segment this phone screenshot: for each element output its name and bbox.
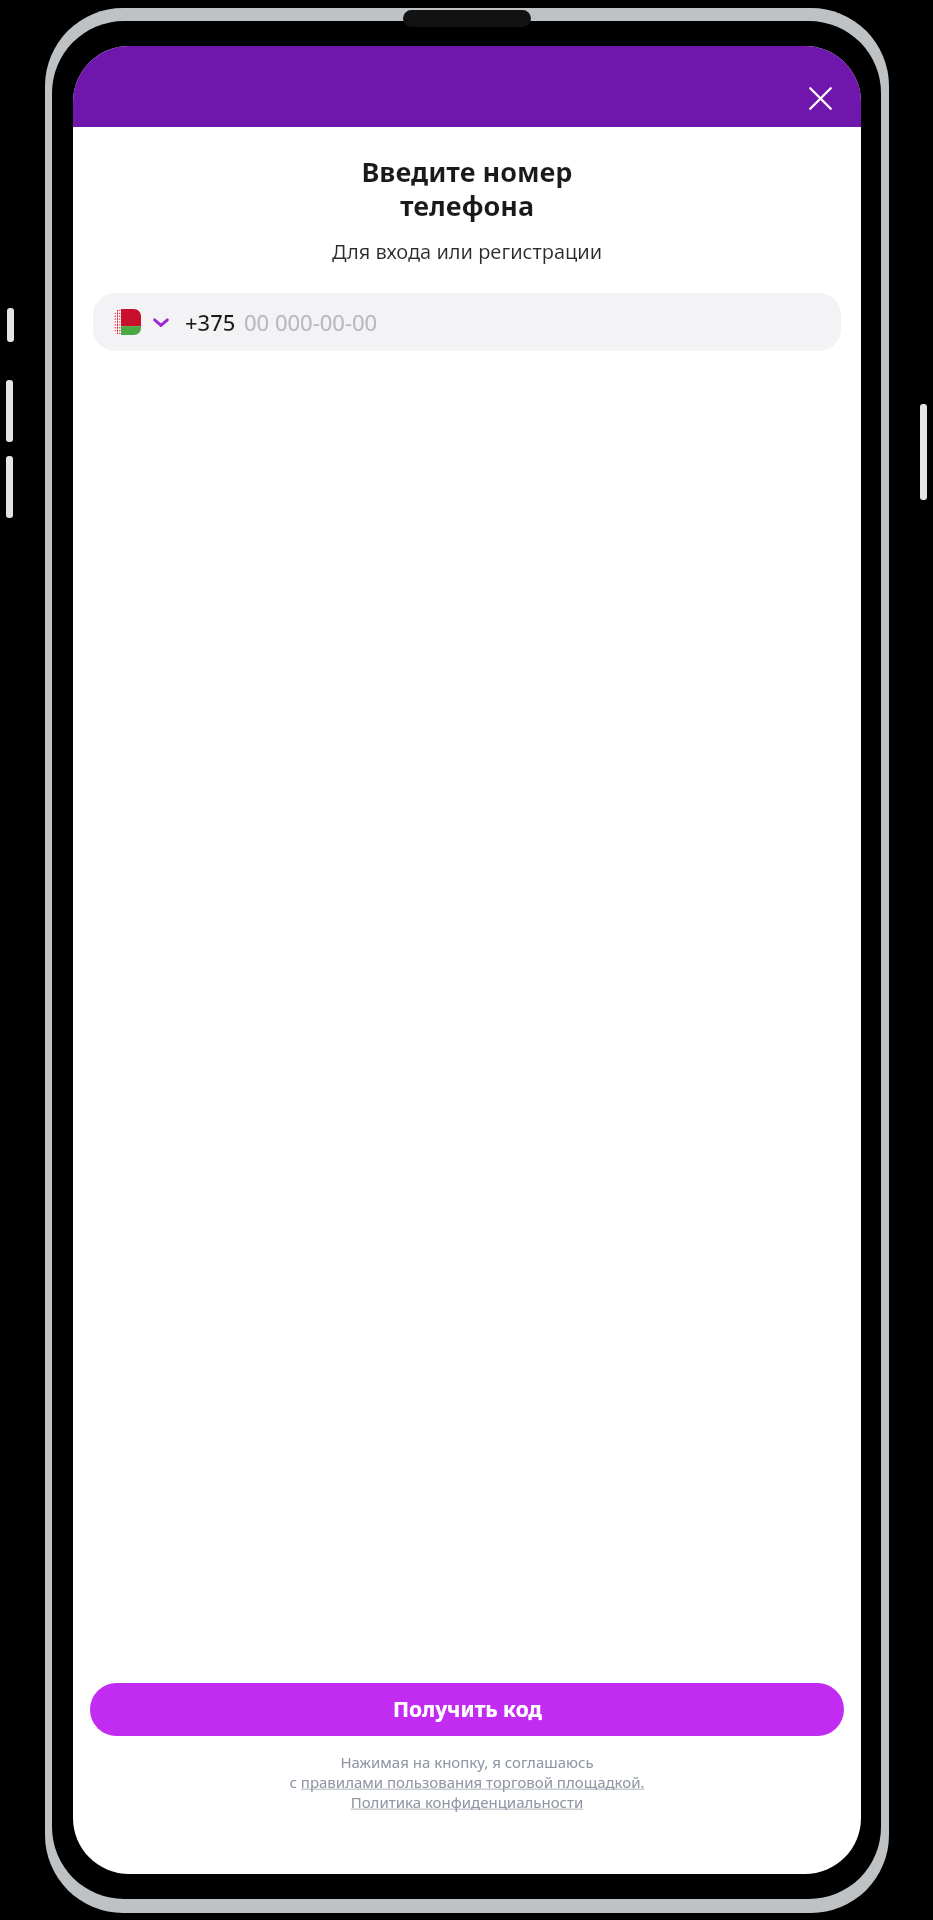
button[interactable]: +375	[93, 293, 841, 351]
button[interactable]: Политика конфиденциальности	[85, 1792, 849, 1812]
staticText: Введите номер телефона	[97, 153, 837, 224]
button[interactable]: с правилами пользования торговой площадк…	[85, 1772, 849, 1792]
button[interactable]: Получить код	[90, 1683, 844, 1736]
button[interactable]: Close	[797, 75, 843, 121]
staticText: Получить код	[393, 1695, 542, 1724]
staticText: с правилами пользования торговой площадк…	[85, 1772, 849, 1792]
staticText: 00 000-00-00	[244, 307, 378, 337]
staticText: +375	[185, 307, 236, 337]
staticText: Нажимая на кнопку, я соглашаюсь	[89, 1752, 845, 1772]
staticText: Для входа или регистрации	[97, 238, 837, 265]
staticText: Политика конфиденциальности	[85, 1792, 849, 1812]
